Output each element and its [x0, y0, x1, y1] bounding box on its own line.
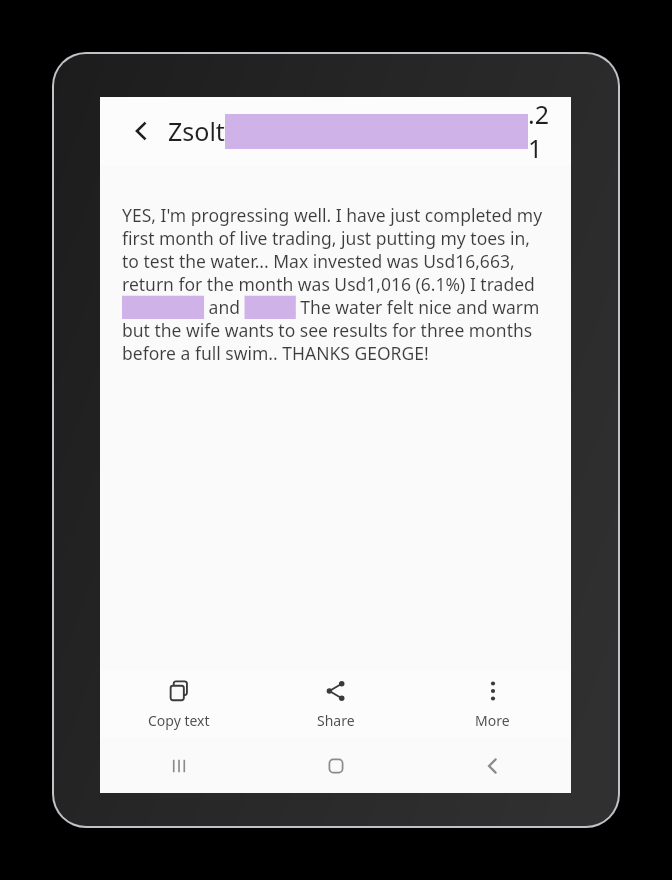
button[interactable]: Back: [414, 738, 571, 793]
staticText: Copy text: [148, 711, 210, 730]
staticText: Zsolt: [168, 114, 225, 148]
button[interactable]: Back: [122, 111, 162, 151]
button[interactable]: Recent apps: [100, 738, 257, 793]
staticText: YES, I'm progressing well. I have just c…: [122, 203, 549, 365]
staticText: Share: [317, 711, 355, 730]
button[interactable]: Home: [257, 738, 414, 793]
staticText: More: [475, 711, 510, 730]
staticText: .21: [528, 97, 563, 165]
button[interactable]: Copy text: [100, 670, 257, 738]
button[interactable]: Share: [257, 670, 414, 738]
button[interactable]: More: [414, 670, 571, 738]
